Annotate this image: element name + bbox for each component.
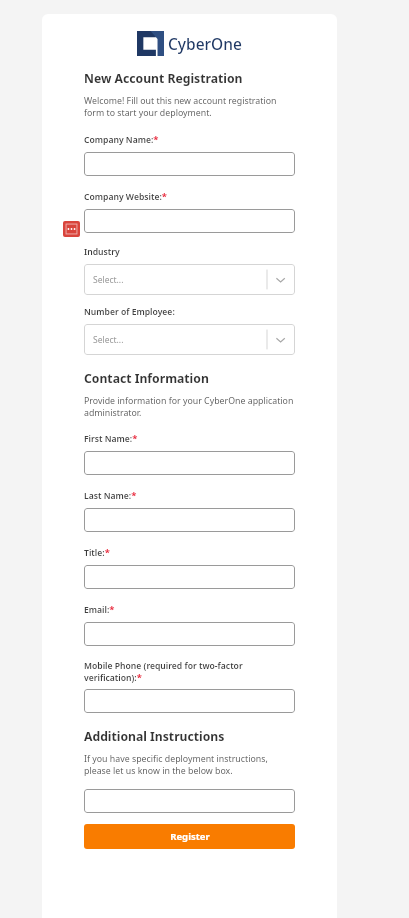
staticText: Additional Instructions (84, 728, 225, 745)
staticText: CyberOne (168, 33, 242, 54)
staticText: Welcome! Fill out this new account regis… (84, 95, 295, 119)
staticText: Select... (93, 334, 124, 346)
staticText: Register (170, 830, 210, 843)
staticText: New Account Registration (84, 70, 243, 87)
staticText: Mobile Phone (required for two-factor ve… (84, 660, 295, 683)
button[interactable] (84, 622, 295, 646)
staticText: Company Website:* (84, 190, 168, 203)
staticText: Provide information for your CyberOne ap… (84, 395, 295, 419)
staticText: Number of Employee: (84, 306, 175, 318)
staticText: Company Name:* (84, 133, 159, 146)
button[interactable] (84, 152, 295, 176)
button[interactable] (84, 789, 295, 813)
staticText: Last Name:* (84, 489, 137, 502)
staticText: Select... (93, 274, 124, 286)
staticText: If you have specific deployment instruct… (84, 753, 295, 777)
button[interactable] (84, 689, 295, 713)
button[interactable]: Register (84, 824, 295, 849)
button[interactable]: Select... (84, 324, 295, 355)
button[interactable] (84, 565, 295, 589)
button[interactable] (84, 451, 295, 475)
button[interactable] (84, 209, 295, 233)
staticText: Contact Information (84, 370, 209, 387)
button[interactable]: Autofill (63, 221, 80, 237)
button[interactable]: Select... (84, 264, 295, 295)
button[interactable] (84, 508, 295, 532)
staticText: Title:* (84, 546, 110, 559)
staticText: First Name:* (84, 432, 138, 445)
staticText: Industry (84, 246, 120, 258)
staticText: Email:* (84, 603, 115, 616)
